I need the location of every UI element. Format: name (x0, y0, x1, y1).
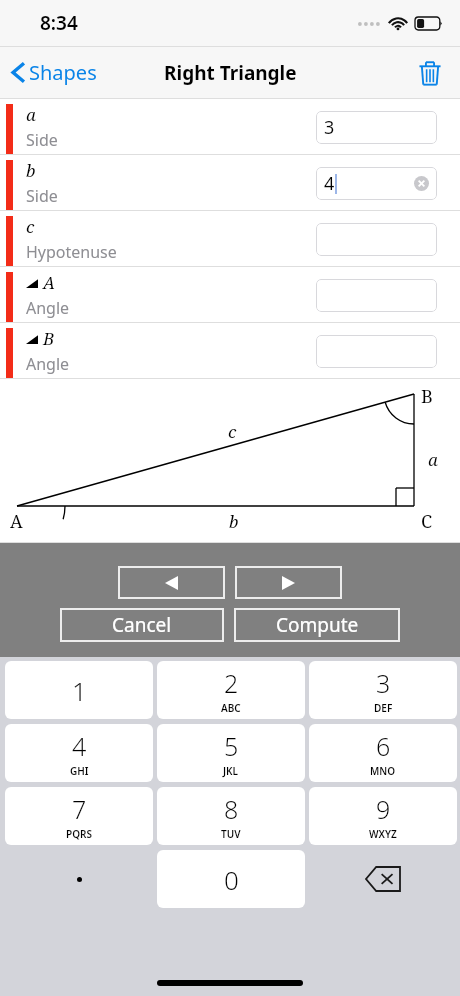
button[interactable]: c (0, 211, 460, 267)
button[interactable] (316, 279, 437, 312)
staticText: c (228, 420, 237, 443)
staticText: Side (26, 185, 58, 207)
staticText: ABC (221, 701, 241, 715)
staticText: MNO (370, 764, 396, 778)
staticText: 5 (224, 729, 239, 763)
staticText: DEF (374, 701, 393, 715)
staticText: B (43, 327, 55, 350)
button[interactable]: 2 (157, 661, 305, 719)
staticText: PQRS (66, 827, 92, 841)
staticText: 7 (72, 792, 87, 826)
button[interactable] (316, 335, 437, 368)
staticText: Compute (276, 612, 359, 638)
staticText: 1 (72, 673, 87, 708)
button[interactable]: Delete (412, 53, 448, 92)
staticText: 3 (376, 666, 391, 700)
staticText: 4 (324, 171, 335, 196)
staticText: Hypotenuse (26, 241, 117, 263)
button[interactable]: Previous field (118, 566, 225, 599)
staticText: a (26, 103, 36, 126)
button[interactable]: Next field (235, 566, 342, 599)
button[interactable]: Clear (414, 176, 429, 191)
staticText: a (428, 448, 438, 471)
staticText: 0 (224, 862, 239, 897)
staticText: Side (26, 129, 58, 151)
staticText: c (26, 215, 35, 238)
button[interactable]: Cancel (60, 608, 224, 642)
staticText: 8 (224, 792, 239, 826)
staticText: 2 (224, 666, 239, 700)
staticText: 9 (376, 792, 391, 826)
staticText: TUV (221, 827, 241, 841)
staticText: Angle (26, 297, 70, 319)
button[interactable]: 9 (309, 787, 457, 845)
button[interactable]: 3 (316, 111, 437, 144)
staticText: A (10, 509, 23, 534)
staticText: b (26, 159, 36, 182)
staticText: 6 (376, 729, 391, 763)
button[interactable]: 3 (309, 661, 457, 719)
button[interactable]: 8 (157, 787, 305, 845)
button[interactable]: B (0, 323, 460, 379)
button[interactable]: 6 (309, 724, 457, 782)
staticText: JKL (223, 764, 239, 778)
button[interactable]: 1 (5, 661, 153, 719)
staticText: 3 (324, 115, 335, 140)
button[interactable]: 0 (157, 850, 305, 908)
button[interactable]: 4 (316, 167, 437, 200)
button[interactable]: a (0, 99, 460, 155)
staticText: A (43, 271, 55, 294)
button[interactable]: Backspace (309, 850, 457, 908)
staticText: WXYZ (369, 827, 397, 841)
staticText: B (421, 384, 433, 409)
button[interactable]: 4 (5, 724, 153, 782)
staticText: Cancel (112, 612, 172, 638)
button[interactable] (316, 223, 437, 256)
staticText: 4 (72, 729, 87, 763)
button[interactable]: Shapes (0, 53, 107, 92)
staticText: 8:34 (40, 10, 78, 36)
staticText: Angle (26, 353, 70, 375)
button[interactable]: Compute (234, 608, 400, 642)
staticText: GHI (70, 764, 89, 778)
staticText: Right Triangle (164, 60, 297, 86)
button[interactable]: Decimal point (5, 850, 153, 908)
staticText: Shapes (29, 59, 97, 86)
button[interactable]: 5 (157, 724, 305, 782)
staticText: b (229, 510, 239, 533)
staticText: C (421, 509, 433, 534)
button[interactable]: 7 (5, 787, 153, 845)
button[interactable]: b (0, 155, 460, 211)
button[interactable]: A (0, 267, 460, 323)
